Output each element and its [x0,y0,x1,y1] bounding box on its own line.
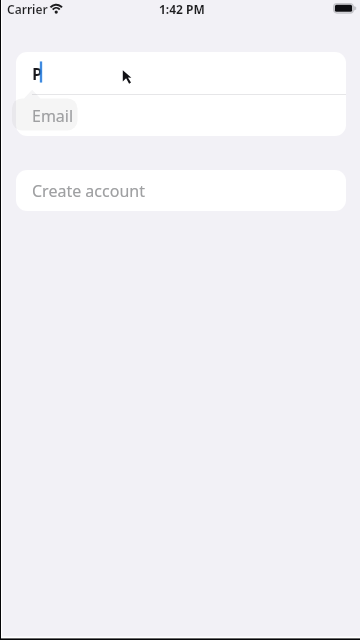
staticText: Carrier [7,1,48,17]
staticText: 1:42 PM [159,1,205,17]
button[interactable] [16,95,346,136]
other: Wi-Fi [49,0,65,14]
staticText: Create account [32,180,145,202]
other: Pointer [0,0,360,640]
other: Battery [333,2,357,14]
staticText: P [32,62,43,84]
button[interactable]: P [16,52,346,94]
staticText: Email [32,105,74,127]
button[interactable]: Create account [16,170,346,211]
